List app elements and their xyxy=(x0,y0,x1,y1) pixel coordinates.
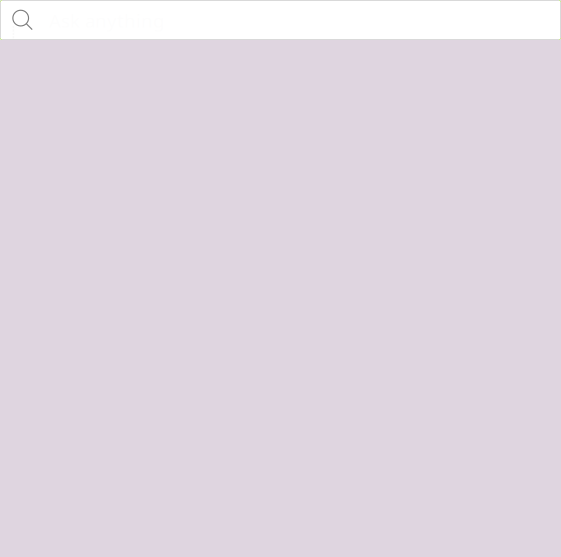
button[interactable]: Search xyxy=(0,0,561,40)
